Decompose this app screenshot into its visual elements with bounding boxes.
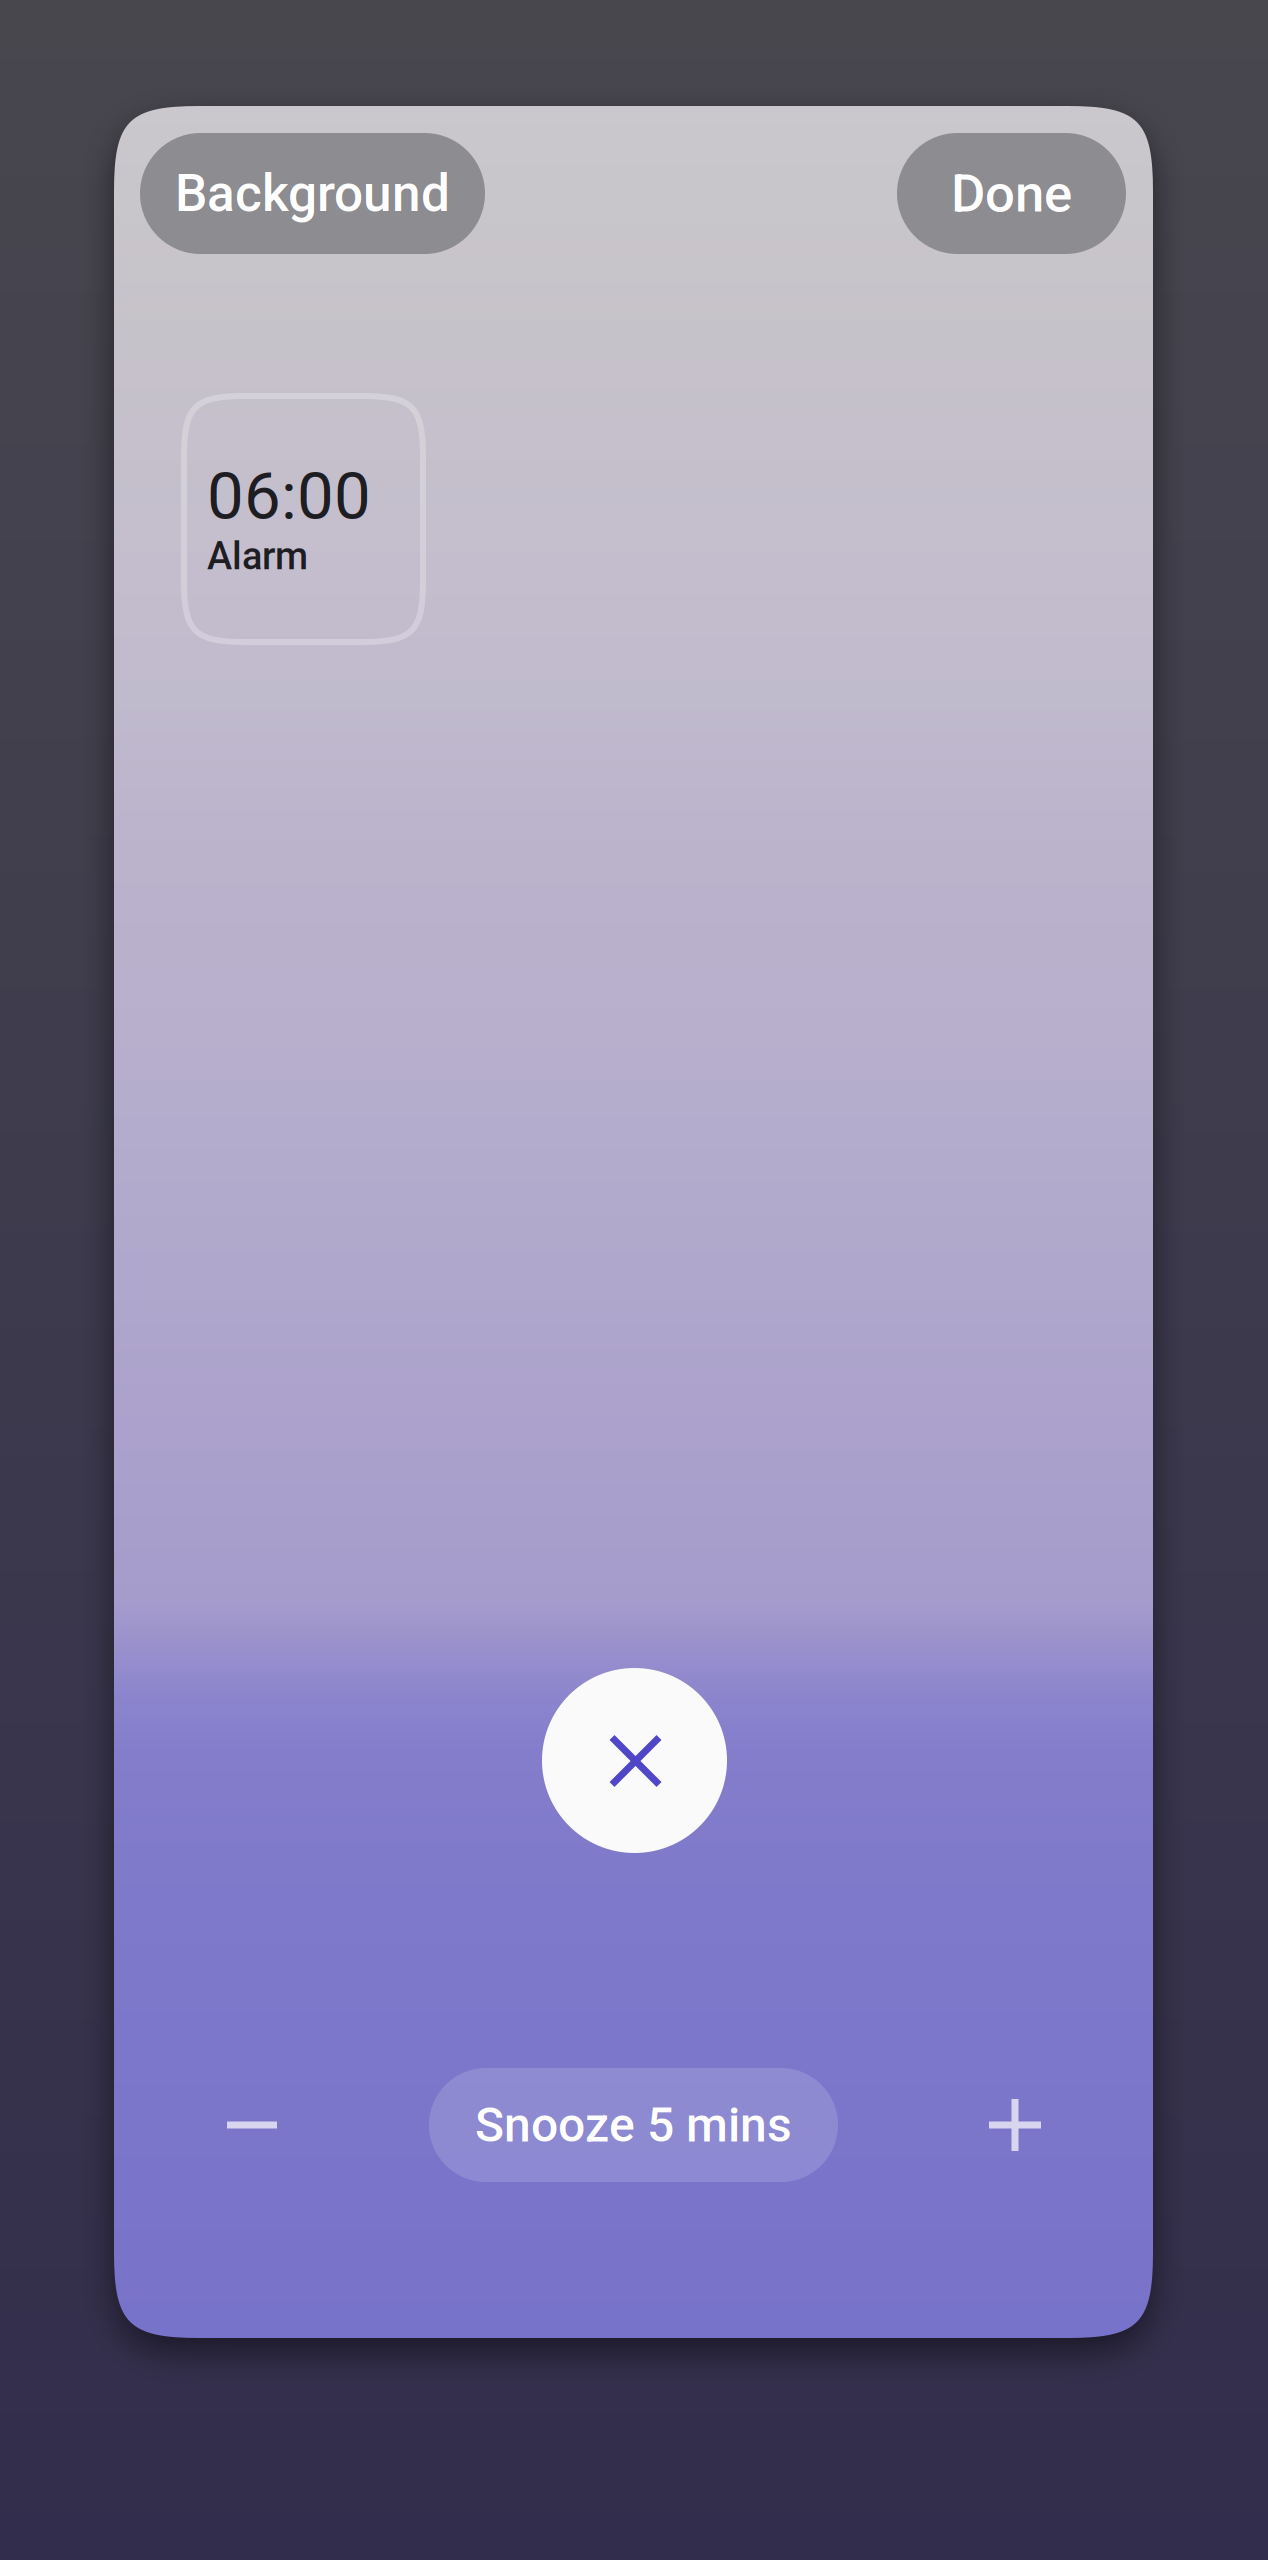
button[interactable]: Increase snooze time <box>955 2065 1075 2185</box>
staticText: Alarm <box>207 534 308 578</box>
button[interactable]: Dismiss alarm <box>542 1668 727 1853</box>
button[interactable]: Snooze 5 mins <box>429 2068 838 2182</box>
staticText: Background <box>175 163 450 224</box>
button[interactable]: Done <box>897 133 1126 254</box>
button[interactable]: Background <box>140 133 485 254</box>
button[interactable]: Decrease snooze time <box>192 2065 312 2185</box>
staticText: Snooze 5 mins <box>475 2097 792 2153</box>
staticText: Done <box>951 163 1072 224</box>
staticText: 06:00 <box>207 458 371 535</box>
